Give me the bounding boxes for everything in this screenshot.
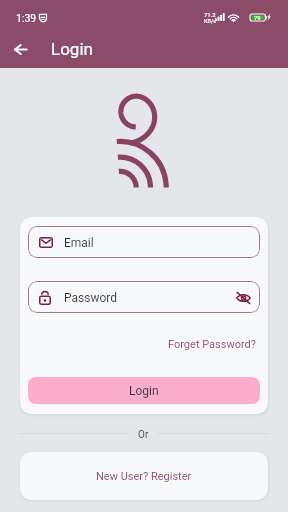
staticText: Password — [64, 291, 118, 305]
button[interactable]: Email — [28, 226, 260, 258]
button[interactable]: Show password — [232, 287, 254, 309]
staticText: Or — [138, 429, 149, 441]
button[interactable]: Back — [4, 33, 36, 65]
staticText: 71.2 — [204, 11, 216, 18]
button[interactable]: New User? Register — [20, 452, 268, 500]
staticText: Login — [51, 39, 93, 59]
button[interactable]: Login — [28, 377, 260, 404]
staticText: Login — [129, 384, 159, 398]
staticText: 1:39 — [16, 12, 37, 24]
staticText: KB/s — [204, 18, 216, 24]
button[interactable]: Forget Password? — [164, 335, 260, 354]
staticText: New User? Register — [96, 470, 192, 483]
staticText: 79 — [254, 14, 261, 21]
button[interactable]: Password — [28, 281, 260, 313]
staticText: Forget Password? — [168, 338, 256, 351]
staticText: Email — [64, 236, 94, 250]
